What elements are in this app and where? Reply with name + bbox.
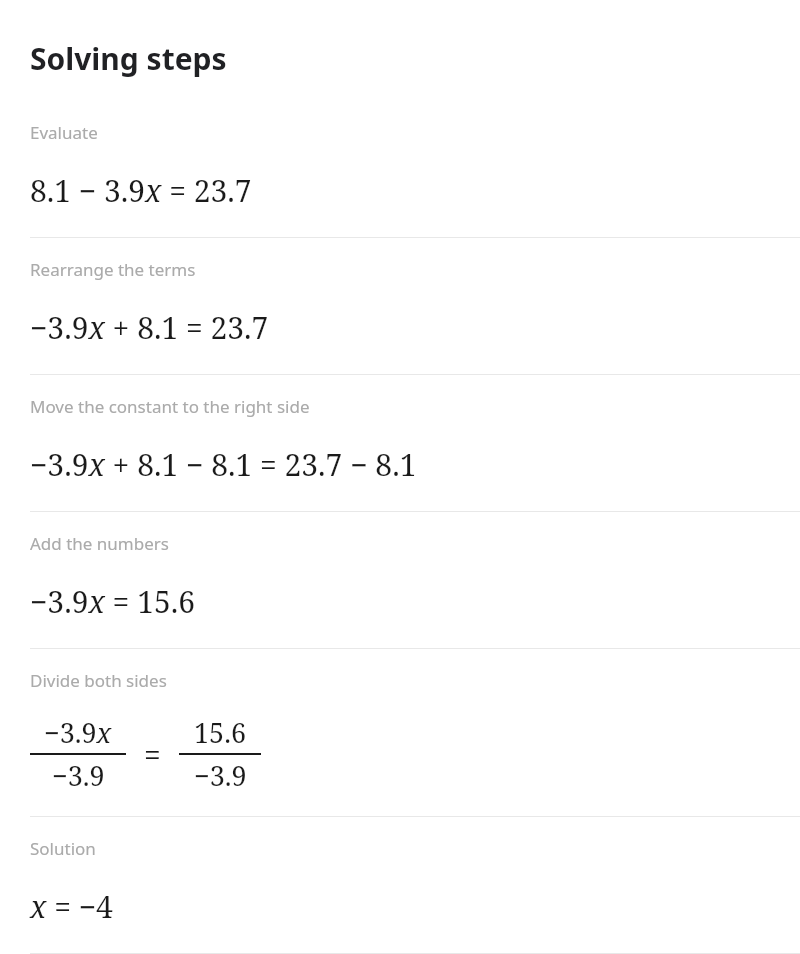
staticText: = [144, 734, 161, 775]
staticText: −3.9x = 15.6 [30, 581, 195, 622]
staticText: Rearrange the terms [30, 258, 196, 281]
staticText: −3.9 [52, 757, 105, 794]
staticText: Move the constant to the right side [30, 395, 310, 418]
button[interactable]: Divide both sides [0, 649, 800, 816]
button[interactable]: Move the constant to the right side [0, 375, 800, 511]
staticText: −3.9x + 8.1 − 8.1 = 23.7 − 8.1 [30, 444, 417, 485]
staticText: x = −4 [30, 886, 113, 927]
staticText: Add the numbers [30, 532, 169, 555]
staticText: −3.9 [194, 757, 247, 794]
staticText: −3.9x + 8.1 = 23.7 [30, 307, 269, 348]
staticText: Divide both sides [30, 669, 167, 692]
staticText: −3.9x [44, 714, 112, 751]
staticText: Solving steps [30, 38, 227, 79]
staticText: 8.1 − 3.9x = 23.7 [30, 170, 252, 211]
staticText: Evaluate [30, 121, 98, 144]
staticText: Solution [30, 837, 96, 860]
button[interactable]: Evaluate [0, 101, 800, 237]
staticText: 15.6 [194, 714, 247, 751]
button[interactable]: Solution [0, 817, 800, 953]
button[interactable]: Rearrange the terms [0, 238, 800, 374]
button[interactable]: Add the numbers [0, 512, 800, 648]
